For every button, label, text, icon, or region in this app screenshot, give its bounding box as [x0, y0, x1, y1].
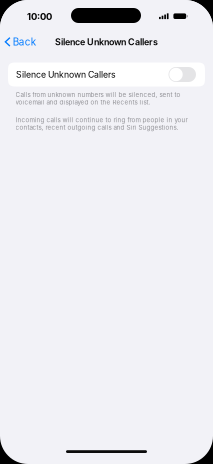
staticText: Calls from unknown numbers will be silen…	[15, 91, 180, 106]
staticText: 10:00	[27, 11, 52, 22]
staticText: Incoming calls will continue to ring fro…	[15, 116, 187, 131]
staticText: Silence Unknown Callers	[16, 69, 116, 80]
button[interactable]: Silence Unknown Callers	[8, 62, 205, 86]
button[interactable]: Back	[1, 31, 40, 53]
staticText: Silence Unknown Callers	[55, 37, 158, 47]
staticText: Back	[13, 36, 36, 48]
